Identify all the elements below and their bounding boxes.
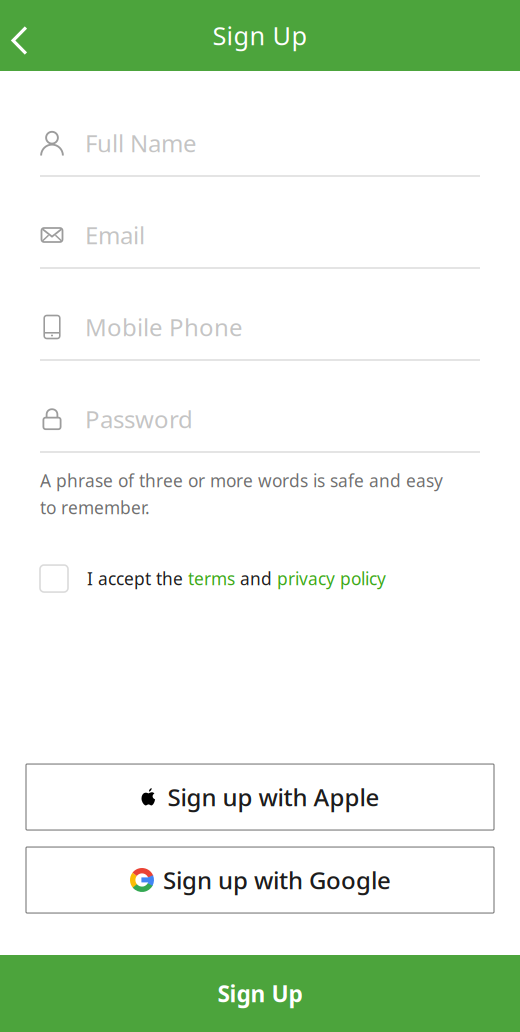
staticText: privacy policy <box>277 567 386 590</box>
staticText: I accept the <box>87 567 188 590</box>
staticText: terms <box>188 567 235 590</box>
staticText: Email <box>85 219 145 251</box>
button[interactable]: Back <box>0 5 39 65</box>
staticText: Password <box>85 403 193 435</box>
staticText: Sign up with Apple <box>167 781 379 813</box>
staticText: to remember. <box>40 496 150 519</box>
staticText: A phrase of three or more words is safe … <box>40 469 443 492</box>
button[interactable]: I accept the <box>0 519 520 592</box>
staticText: Sign up with Google <box>163 864 391 896</box>
staticText: Sign Up <box>217 978 302 1008</box>
button[interactable]: Sign up with Apple <box>26 764 494 830</box>
button[interactable]: Sign up with Google <box>26 847 494 913</box>
staticText: Full Name <box>85 127 197 159</box>
button[interactable]: Sign Up <box>0 955 520 1032</box>
staticText: and <box>235 567 277 590</box>
staticText: Mobile Phone <box>85 311 243 343</box>
staticText: Sign Up <box>212 19 307 52</box>
